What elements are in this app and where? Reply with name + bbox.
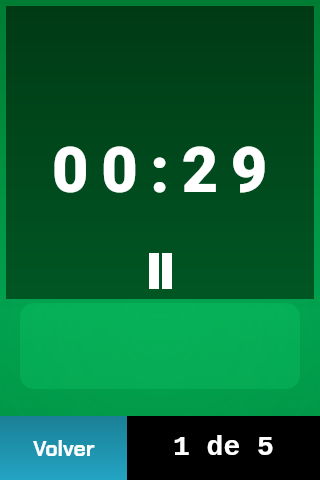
staticText: Volver [33, 435, 95, 462]
button[interactable]: 00:29 [6, 6, 314, 299]
button[interactable]: Pause [149, 253, 172, 289]
staticText: 1 de 5 [173, 432, 274, 464]
button[interactable]: 1 de 5 [127, 416, 320, 480]
button[interactable]: Volver [0, 416, 127, 480]
staticText: 00:29 [52, 134, 280, 208]
